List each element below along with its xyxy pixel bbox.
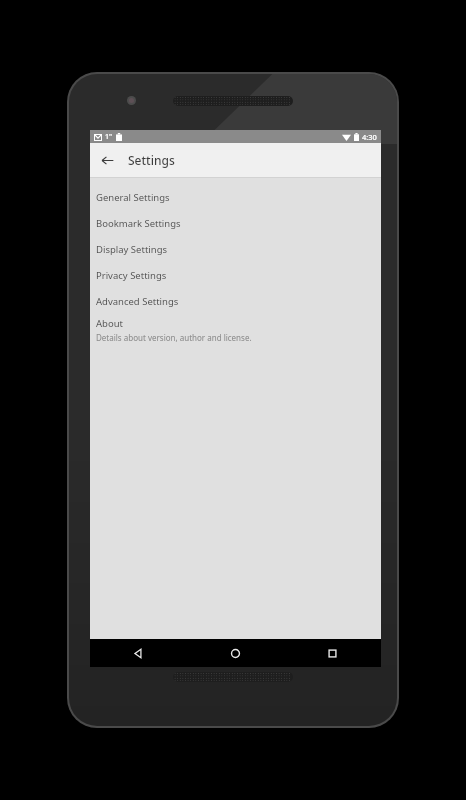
button[interactable]: Back (94, 147, 120, 173)
button[interactable]: Bookmark Settings (90, 210, 381, 236)
button[interactable]: About (90, 314, 381, 344)
button[interactable]: Privacy Settings (90, 262, 381, 288)
staticText: 1" (105, 132, 113, 142)
staticText: Settings (128, 152, 175, 168)
staticText: 4:30 (362, 132, 377, 142)
staticText: Bookmark Settings (96, 217, 181, 230)
button[interactable]: Recents (284, 639, 381, 667)
staticText: About (96, 317, 123, 330)
staticText: Privacy Settings (96, 269, 167, 282)
button[interactable]: Home (187, 639, 284, 667)
button[interactable]: General Settings (90, 184, 381, 210)
button[interactable]: Display Settings (90, 236, 381, 262)
button[interactable]: Advanced Settings (90, 288, 381, 314)
staticText: Display Settings (96, 243, 168, 256)
staticText: Advanced Settings (96, 295, 179, 308)
staticText: General Settings (96, 191, 170, 204)
button[interactable]: Back (90, 639, 187, 667)
staticText: Details about version, author and licens… (96, 332, 252, 343)
